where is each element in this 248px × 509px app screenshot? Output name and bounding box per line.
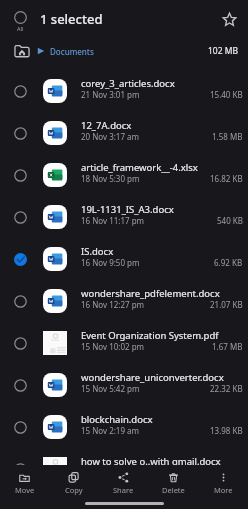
staticText: Delete <box>162 485 185 495</box>
staticText: 6.92 KB <box>214 257 243 268</box>
button[interactable]: article_framework__-4.xlsx <box>0 154 248 196</box>
staticText: wondershare_uniconverter.docx <box>81 371 224 384</box>
staticText: More <box>214 485 233 495</box>
staticText: 15 Nov 2:19 am <box>81 425 140 436</box>
staticText: 19L-1131_IS_A3.docx <box>81 203 174 216</box>
staticText: 16 Nov 9:50 pm <box>81 257 140 268</box>
staticText: 540 KB <box>217 215 243 226</box>
staticText: article_framework__-4.xlsx <box>81 161 198 174</box>
staticText: Move <box>15 485 35 495</box>
staticText: 15.40 KB <box>210 89 243 100</box>
staticText: corey_3_articles.docx <box>81 77 175 90</box>
staticText: 21.07 KB <box>210 299 243 310</box>
staticText: wondershare_pdfelement.docx <box>81 287 220 300</box>
staticText: Share <box>113 485 134 495</box>
button[interactable]: wondershare_uniconverter.docx <box>0 364 248 406</box>
button[interactable]: wondershare_pdfelement.docx <box>0 280 248 322</box>
button[interactable]: Home <box>14 43 30 59</box>
button[interactable]: Favourite <box>210 0 248 38</box>
staticText: 20 Nov 3:17 am <box>81 131 140 142</box>
staticText: 102 MB <box>208 45 239 57</box>
staticText: All <box>17 25 24 32</box>
staticText: 18 Nov 5:30 pm <box>81 173 140 184</box>
staticText: 14 Nov 8:11 pm <box>81 467 140 478</box>
button[interactable]: IS.docx <box>0 238 248 280</box>
staticText: 15 Nov 5:42 pm <box>81 383 140 394</box>
staticText: 22.32 KB <box>210 383 243 394</box>
button[interactable]: Documents <box>50 46 94 57</box>
button[interactable]: blockchain.docx <box>0 406 248 448</box>
staticText: Copy <box>65 485 83 495</box>
staticText: how to solve o..with gmail.docx <box>81 455 221 468</box>
staticText: 1.67 MB <box>212 341 243 352</box>
staticText: 12_7A.docx <box>81 119 132 132</box>
button[interactable]: how to solve o..with gmail.docx <box>0 448 248 490</box>
button[interactable]: Delete <box>148 465 198 498</box>
staticText: 16 Nov 12:27 pm <box>81 299 145 310</box>
button[interactable]: 19L-1131_IS_A3.docx <box>0 196 248 238</box>
button[interactable]: More <box>198 465 248 498</box>
staticText: 1 selected <box>40 10 103 28</box>
staticText: 16 Nov 11:17 pm <box>81 215 145 226</box>
staticText: 21 Nov 3:01 pm <box>81 89 140 100</box>
staticText: blockchain.docx <box>81 413 153 426</box>
staticText: IS.docx <box>81 245 114 258</box>
button[interactable]: Share <box>98 465 148 498</box>
button[interactable]: 12_7A.docx <box>0 112 248 154</box>
staticText: 16.82 KB <box>210 173 243 184</box>
staticText: 1.58 MB <box>212 131 243 142</box>
button[interactable]: Event Organization System.pdf <box>0 322 248 364</box>
staticText: 15 Nov 10:02 pm <box>81 341 145 352</box>
button[interactable]: corey_3_articles.docx <box>0 70 248 112</box>
button[interactable]: Move <box>0 465 49 498</box>
staticText: Event Organization System.pdf <box>81 329 219 342</box>
button[interactable]: Select all <box>0 0 40 38</box>
button[interactable]: Copy <box>49 465 98 498</box>
staticText: 13.98 KB <box>210 425 243 436</box>
